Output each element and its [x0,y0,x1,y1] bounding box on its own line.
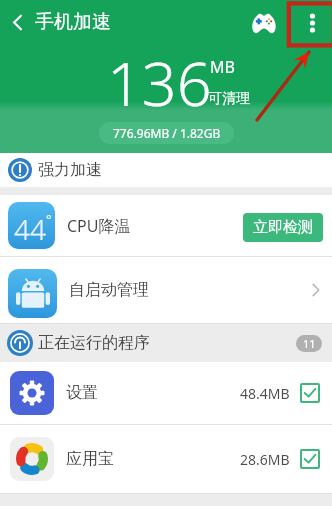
staticText: 44 [14,210,46,248]
staticText: 可清理 [208,90,250,108]
staticText: 立即检测 [253,218,313,237]
button[interactable]: Selected [300,449,320,469]
staticText: 强力加速 [38,160,102,180]
staticText: 自启动管理 [69,280,149,300]
button[interactable]: 立即检测 [243,213,323,242]
staticText: CPU降温 [67,215,131,237]
button[interactable]: 设置 [0,362,332,424]
staticText: 应用宝 [66,449,114,469]
button[interactable]: More options [287,0,332,44]
staticText: 136 [107,41,212,124]
staticText: 776.96MB / 1.82GB [113,125,221,141]
button[interactable]: 自启动管理 [0,257,332,323]
staticText: 48.4MB [240,384,290,403]
button[interactable]: Games [241,0,287,44]
staticText: ° [46,210,52,228]
staticText: 手机加速 [35,10,111,34]
button[interactable]: Back [0,0,35,44]
button[interactable]: 强力加速 [0,153,332,187]
staticText: 设置 [66,383,98,403]
staticText: 正在运行的程序 [38,333,150,353]
staticText: MB [210,56,235,78]
staticText: 28.6MB [240,450,290,469]
button[interactable]: 应用宝 [0,425,332,493]
button[interactable]: Selected [300,383,320,403]
staticText: 11 [303,336,316,351]
button[interactable]: 44 [0,195,332,256]
